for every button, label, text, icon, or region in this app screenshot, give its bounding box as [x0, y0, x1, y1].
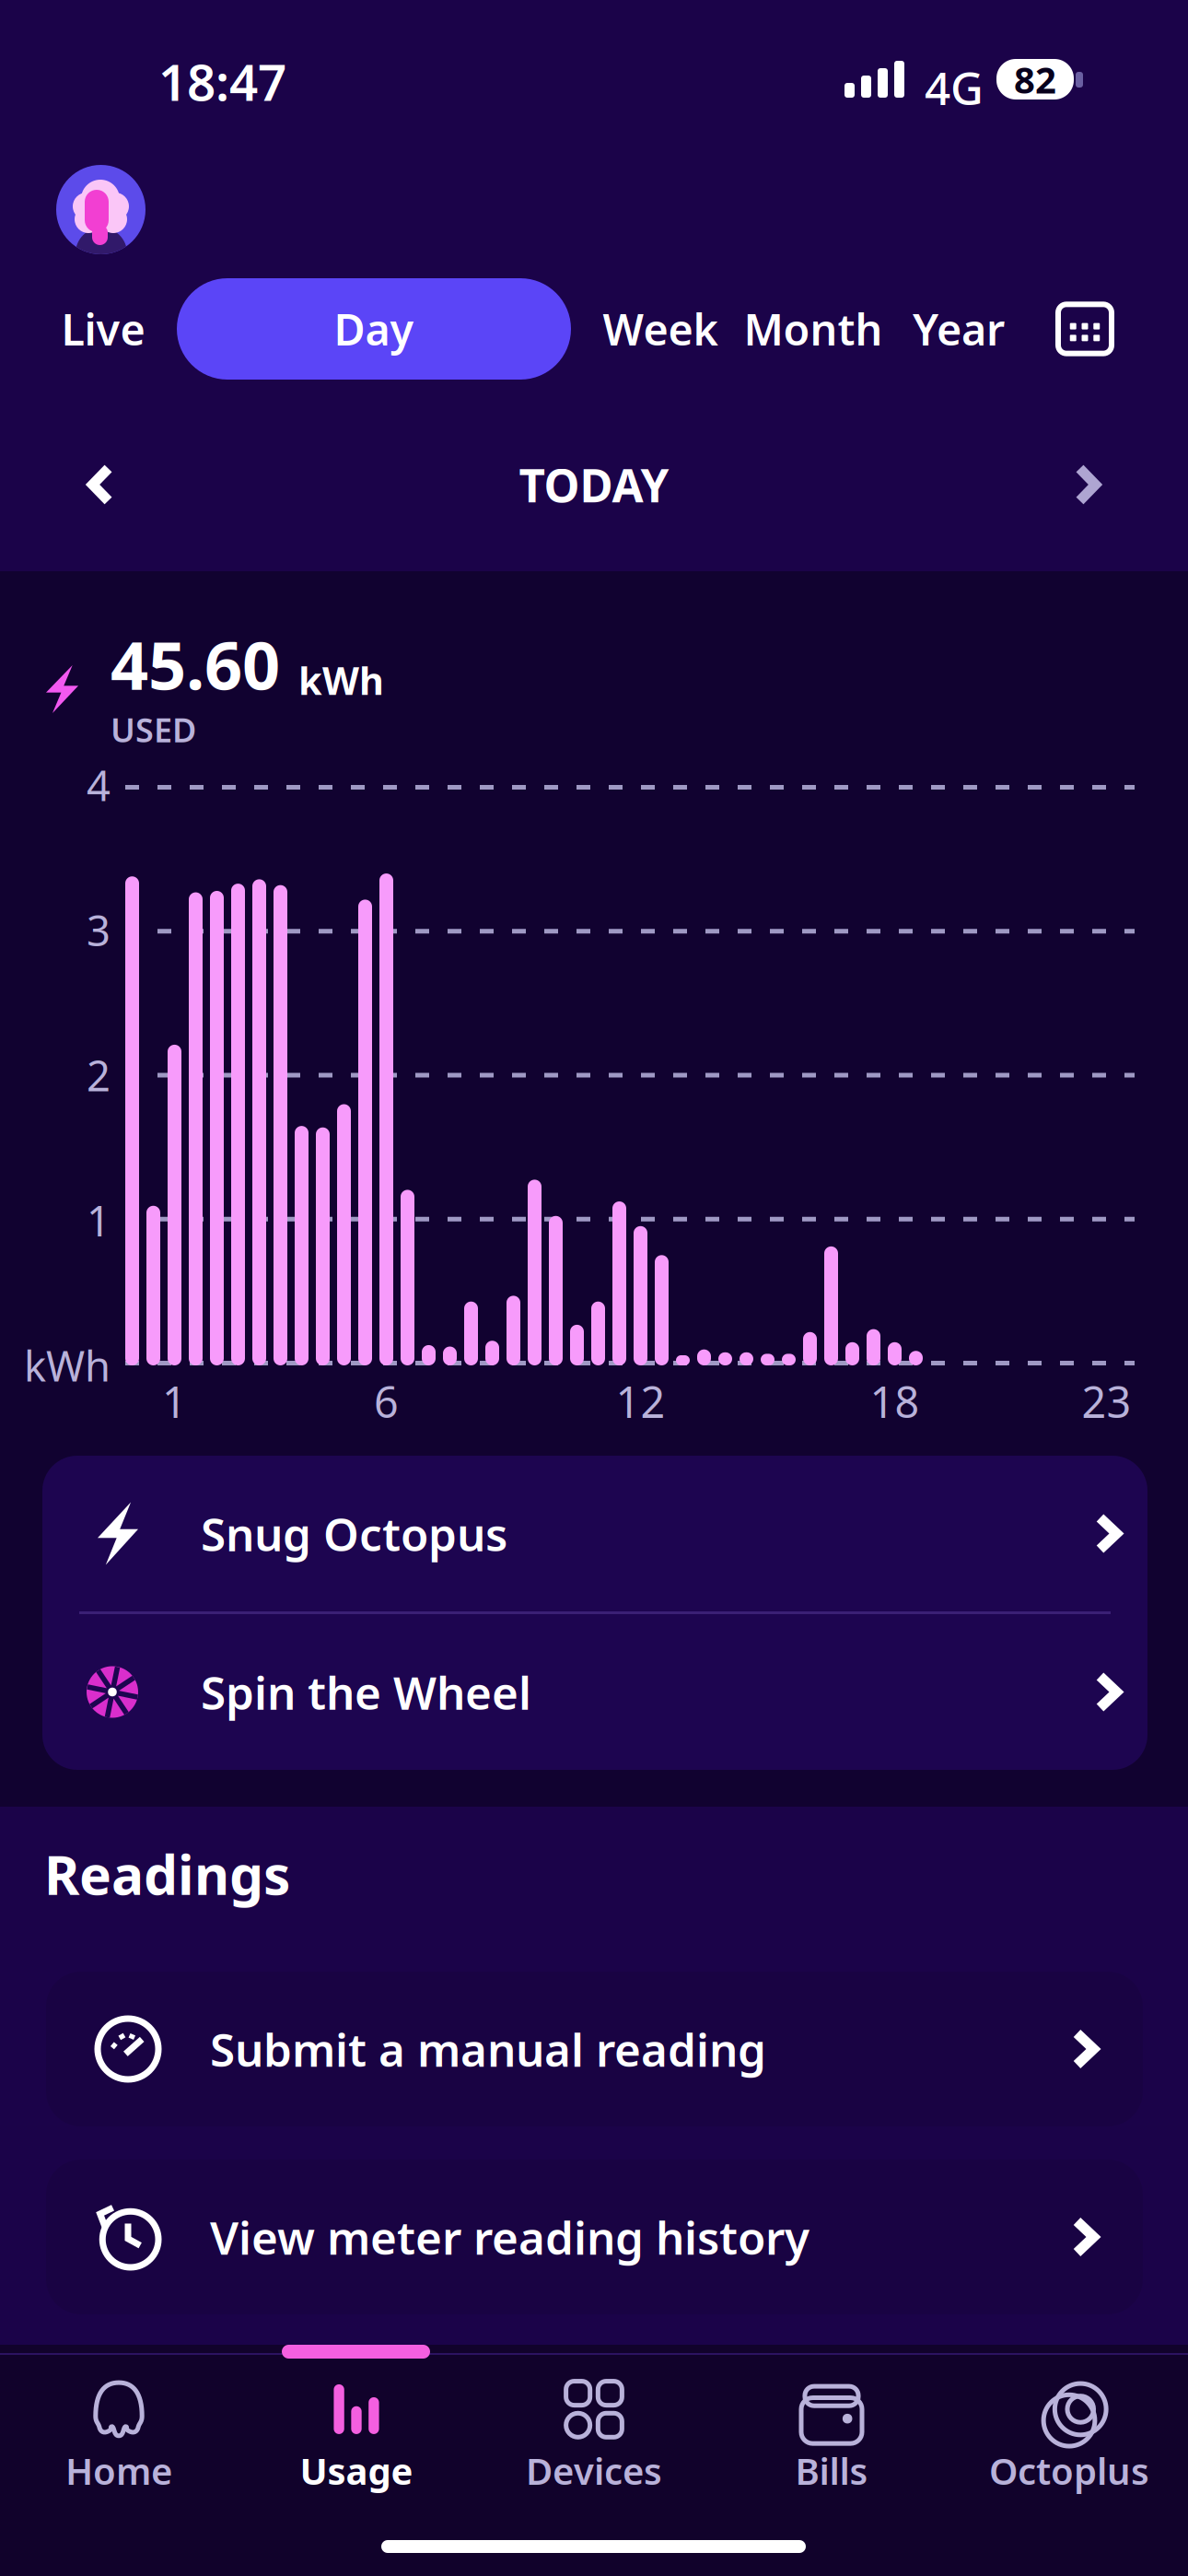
staticText: 1 — [87, 1193, 111, 1248]
staticText: Devices — [526, 2446, 662, 2495]
staticText: USED — [111, 708, 196, 752]
button[interactable]: Account — [56, 165, 146, 254]
button[interactable]: Day — [177, 278, 571, 380]
staticText: Readings — [44, 1838, 290, 1910]
button[interactable]: Usage — [238, 2362, 475, 2510]
staticText: View meter reading history — [210, 2207, 809, 2267]
button[interactable]: Submit a manual reading — [46, 1972, 1143, 2126]
staticText: 18 — [870, 1373, 920, 1430]
button[interactable]: Year — [901, 278, 1017, 380]
staticText: Week — [603, 300, 718, 357]
staticText: Bills — [795, 2446, 868, 2495]
button[interactable]: Month — [744, 278, 882, 380]
staticText: Live — [61, 300, 145, 357]
button[interactable]: Next day — [1047, 440, 1128, 529]
staticText: 18:47 — [158, 48, 286, 115]
staticText: Spin the Wheel — [201, 1662, 531, 1722]
staticText: 12 — [616, 1373, 665, 1430]
staticText: Usage — [300, 2446, 413, 2495]
button[interactable]: View meter reading history — [46, 2160, 1143, 2314]
button[interactable]: Spin the Wheel — [42, 1614, 1147, 1770]
staticText: Snug Octopus — [201, 1503, 507, 1564]
staticText: 6 — [374, 1373, 399, 1430]
staticText: 23 — [1082, 1373, 1131, 1430]
staticText: TODAY — [519, 454, 669, 515]
staticText: 1 — [162, 1373, 187, 1430]
staticText: Submit a manual reading — [210, 2019, 766, 2079]
button[interactable]: Home — [0, 2362, 238, 2510]
button[interactable]: Bills — [713, 2362, 950, 2510]
button[interactable]: Octoplus — [950, 2362, 1188, 2510]
staticText: 4 — [87, 757, 111, 813]
staticText: 45.60 — [111, 620, 280, 708]
button[interactable]: Pick a date — [1042, 278, 1127, 380]
button[interactable]: Devices — [475, 2362, 713, 2510]
button[interactable]: Snug Octopus — [42, 1456, 1147, 1611]
staticText: 3 — [87, 902, 111, 958]
staticText: 2 — [87, 1047, 111, 1103]
button[interactable]: Week — [594, 278, 727, 380]
staticText: Month — [744, 300, 883, 357]
staticText: 4G — [925, 57, 984, 117]
button[interactable]: Previous day — [60, 440, 141, 529]
staticText: kWh — [298, 655, 384, 705]
staticText: 82 — [1014, 55, 1056, 104]
staticText: Day — [334, 300, 414, 357]
button[interactable]: Live — [46, 278, 160, 380]
staticText: Octoplus — [989, 2446, 1149, 2495]
staticText: kWh — [24, 1338, 111, 1393]
staticText: Year — [913, 300, 1005, 357]
staticText: Home — [65, 2446, 172, 2495]
